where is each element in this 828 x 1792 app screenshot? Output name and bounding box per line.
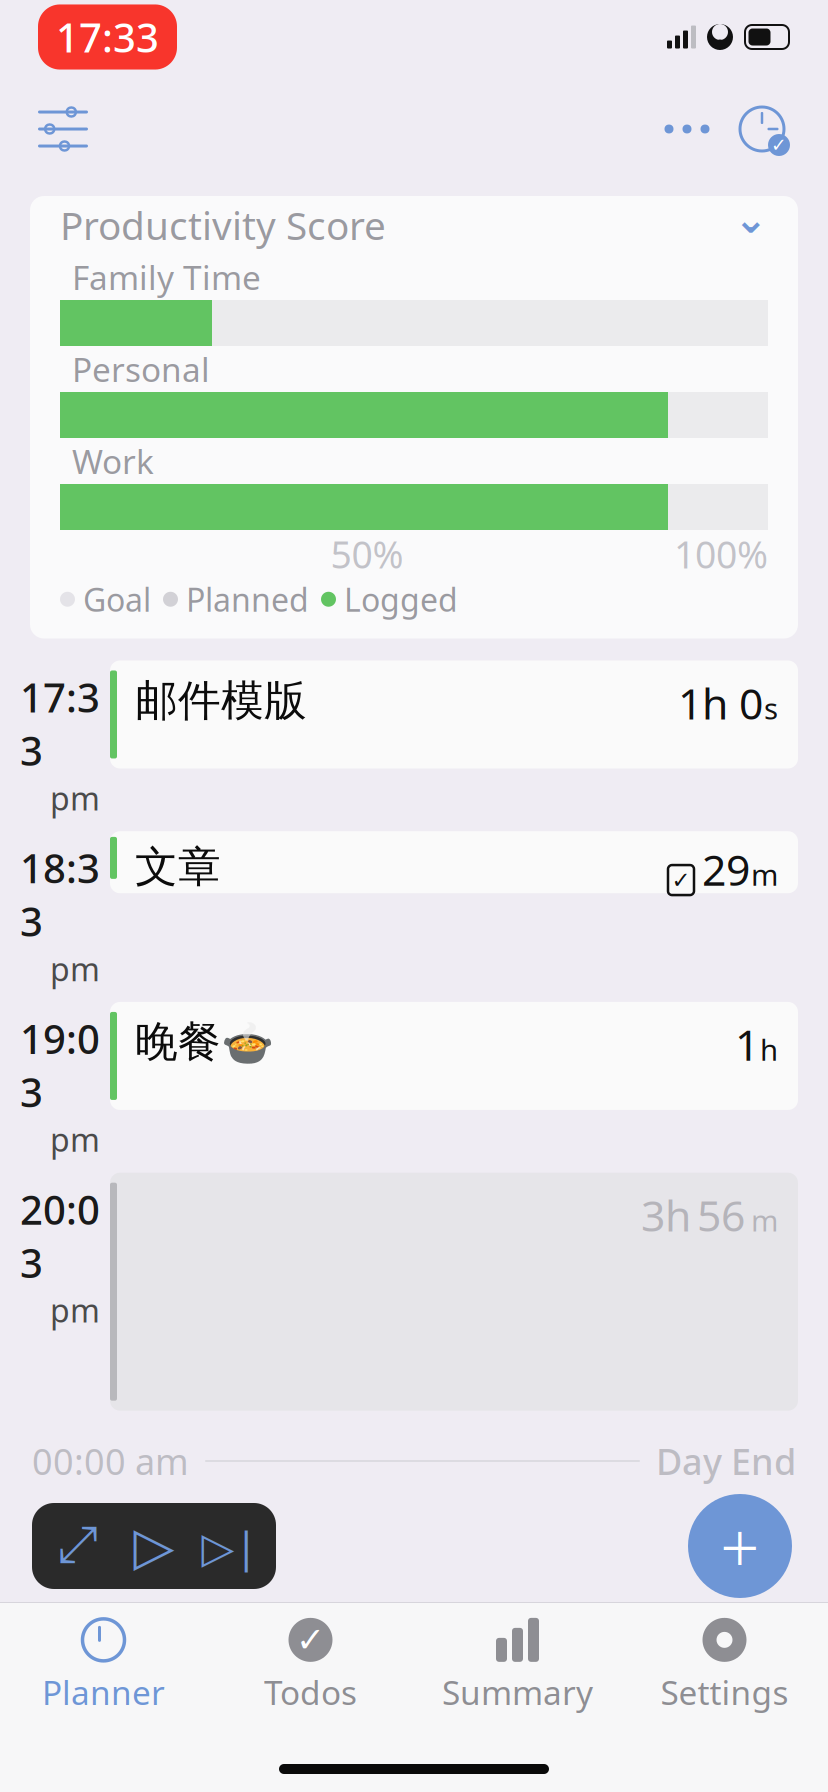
staticText: ✓ <box>296 1620 325 1659</box>
staticText: Work <box>72 439 154 483</box>
staticText: 1h 0 <box>678 674 763 731</box>
staticText: ▷ <box>133 1516 174 1576</box>
staticText: Productivity Score <box>60 199 386 251</box>
staticText: 00:00 am <box>32 1437 189 1485</box>
staticText: 56 <box>697 1187 745 1243</box>
staticText: 18:33 <box>20 841 100 947</box>
button[interactable]: 18:33 <box>0 831 828 990</box>
button[interactable]: ✓ <box>207 1613 414 1717</box>
staticText: Summary <box>442 1670 593 1714</box>
staticText: Planned <box>186 578 309 620</box>
button[interactable]: 19:03 <box>0 1002 828 1161</box>
button[interactable]: Time tracking <box>730 99 794 159</box>
staticText: Logged <box>344 578 458 620</box>
staticText: ✓ <box>771 134 787 156</box>
staticText: 50% <box>330 529 403 579</box>
button[interactable]: Filters <box>34 100 92 158</box>
staticText: pm <box>50 1289 100 1331</box>
staticText: m <box>751 1201 778 1240</box>
button[interactable]: 17:33 <box>0 660 828 819</box>
button[interactable]: Play <box>116 1506 192 1586</box>
staticText: Day End <box>656 1437 796 1485</box>
staticText: Personal <box>72 347 210 391</box>
staticText: 17:33 <box>56 10 159 63</box>
staticText: 1 <box>735 1016 759 1073</box>
button[interactable]: Expand <box>40 1506 116 1586</box>
staticText: h <box>760 1030 778 1069</box>
button[interactable]: Productivity Score <box>30 196 798 254</box>
staticText: ⌄ <box>734 196 768 242</box>
staticText: ▷| <box>201 1518 258 1574</box>
button[interactable]: Skip <box>192 1506 268 1586</box>
staticText: pm <box>50 947 100 990</box>
staticText: 17:33 <box>20 670 100 777</box>
staticText: 20:03 <box>20 1183 100 1289</box>
staticText: Goal <box>83 578 151 620</box>
staticText: 3h <box>641 1187 691 1243</box>
button[interactable]: Add entry <box>688 1494 792 1598</box>
button[interactable]: Summary <box>414 1613 621 1717</box>
staticText: 19:03 <box>20 1012 100 1118</box>
staticText: Settings <box>660 1670 788 1714</box>
staticText: 29 <box>702 841 750 898</box>
staticText: pm <box>50 1118 100 1161</box>
staticText: 邮件模版 <box>135 674 307 727</box>
staticText: 文章 <box>135 841 221 893</box>
staticText: s <box>764 688 778 727</box>
staticText: Todos <box>264 1670 357 1714</box>
staticText: 晚餐🍲 <box>135 1016 274 1068</box>
button[interactable]: Planner <box>0 1613 207 1717</box>
button[interactable]: More options <box>652 100 722 158</box>
staticText: Family Time <box>72 255 261 299</box>
staticText: m <box>751 855 778 894</box>
staticText: pm <box>50 777 100 819</box>
staticText: ✓ <box>671 867 690 893</box>
staticText: ⤢ <box>57 1521 98 1571</box>
staticText: 100% <box>674 529 768 579</box>
button[interactable]: Settings <box>621 1613 828 1717</box>
staticText: + <box>720 1500 760 1592</box>
staticText: Planner <box>42 1670 165 1714</box>
